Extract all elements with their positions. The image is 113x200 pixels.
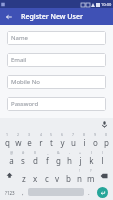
staticText: h xyxy=(67,155,72,166)
staticText: 1 xyxy=(6,132,9,137)
button[interactable]: Shift xyxy=(1,167,18,184)
staticText: s xyxy=(21,155,25,166)
staticText: , xyxy=(22,189,24,197)
staticText: 7 xyxy=(72,132,75,137)
staticText: $ xyxy=(34,150,37,155)
staticText: a xyxy=(9,155,14,166)
staticText: 9 xyxy=(94,132,97,137)
button[interactable]: @ xyxy=(5,149,17,167)
staticText: @ xyxy=(10,150,14,155)
staticText: _ xyxy=(47,150,49,155)
staticText: z xyxy=(22,173,26,184)
staticText: 0 xyxy=(105,132,108,137)
staticText: e xyxy=(27,137,32,148)
staticText: v xyxy=(55,173,60,184)
staticText: w xyxy=(15,137,22,148)
staticText: # xyxy=(22,150,25,155)
staticText: Email xyxy=(11,56,27,64)
staticText: Password xyxy=(11,100,39,108)
staticText: Name xyxy=(11,34,28,42)
button[interactable]: 4 xyxy=(35,131,46,149)
staticText: d xyxy=(33,155,38,166)
staticText: + xyxy=(79,150,82,155)
button[interactable]: , xyxy=(18,186,28,199)
staticText: u xyxy=(71,137,76,148)
button[interactable]: v xyxy=(52,167,63,184)
button[interactable]: 5 xyxy=(46,131,57,149)
staticText: ( xyxy=(91,150,93,155)
staticText: g xyxy=(56,155,61,166)
staticText: n xyxy=(77,173,82,184)
staticText: l xyxy=(101,155,104,166)
button[interactable]: Mobile No xyxy=(7,75,106,89)
staticText: f xyxy=(46,155,49,166)
button[interactable]: Name xyxy=(7,31,106,45)
button[interactable]: 2 xyxy=(13,131,24,149)
button[interactable]: & xyxy=(53,149,64,167)
button[interactable]: . xyxy=(84,186,94,199)
button[interactable]: Back xyxy=(0,8,18,25)
staticText: ?123 xyxy=(5,190,15,196)
button[interactable]: ?123 xyxy=(2,186,18,199)
button[interactable]: + xyxy=(75,149,86,167)
staticText: Mobile No xyxy=(11,78,40,86)
button[interactable]: 9 xyxy=(90,131,101,149)
button[interactable]: Enter xyxy=(94,184,111,200)
staticText: 5 xyxy=(50,132,53,137)
staticText: j xyxy=(79,155,82,166)
button[interactable]: 1 xyxy=(1,131,13,149)
staticText: 10:00 xyxy=(101,2,112,7)
staticText: Register New User xyxy=(21,12,83,22)
staticText: t xyxy=(50,137,53,148)
button[interactable]: ) xyxy=(97,149,108,167)
staticText: - xyxy=(69,150,71,155)
button[interactable]: - xyxy=(64,149,75,167)
button[interactable]: # xyxy=(17,149,29,167)
staticText: q xyxy=(5,137,10,148)
button[interactable]: 6 xyxy=(57,131,68,149)
button[interactable]: Backspace xyxy=(96,167,112,184)
button[interactable]: ( xyxy=(86,149,97,167)
button[interactable]: x xyxy=(30,167,41,184)
staticText: ! xyxy=(79,168,80,173)
staticText: i xyxy=(83,137,86,148)
button[interactable]: ? xyxy=(85,167,96,184)
staticText: p xyxy=(104,137,109,148)
button[interactable]: $ xyxy=(29,149,41,167)
button[interactable]: Voice input xyxy=(100,120,109,129)
staticText: r xyxy=(39,137,43,148)
button[interactable]: 8 xyxy=(79,131,90,149)
staticText: ) xyxy=(102,150,104,155)
staticText: m xyxy=(87,173,95,184)
button[interactable]: _ xyxy=(41,149,53,167)
button[interactable]: Email xyxy=(7,53,106,67)
button[interactable]: 7 xyxy=(68,131,79,149)
staticText: o xyxy=(93,137,98,148)
staticText: 4 xyxy=(40,132,43,137)
button[interactable]: b xyxy=(63,167,74,184)
staticText: 8 xyxy=(83,132,86,137)
staticText: y xyxy=(60,137,65,148)
staticText: c xyxy=(45,173,49,184)
button[interactable]: 3 xyxy=(24,131,35,149)
staticText: ? xyxy=(90,168,92,173)
staticText: 2 xyxy=(17,132,20,137)
button[interactable]: Password xyxy=(7,97,106,111)
staticText: x xyxy=(33,173,38,184)
button[interactable]: 0 xyxy=(101,131,112,149)
button[interactable]: c xyxy=(41,167,52,184)
staticText: & xyxy=(57,150,60,155)
button[interactable]: ! xyxy=(74,167,85,184)
staticText: k xyxy=(89,155,94,166)
staticText: b xyxy=(66,173,71,184)
button[interactable]: z xyxy=(18,167,30,184)
staticText: 3 xyxy=(28,132,31,137)
staticText: . xyxy=(88,189,90,197)
staticText: 6 xyxy=(61,132,64,137)
